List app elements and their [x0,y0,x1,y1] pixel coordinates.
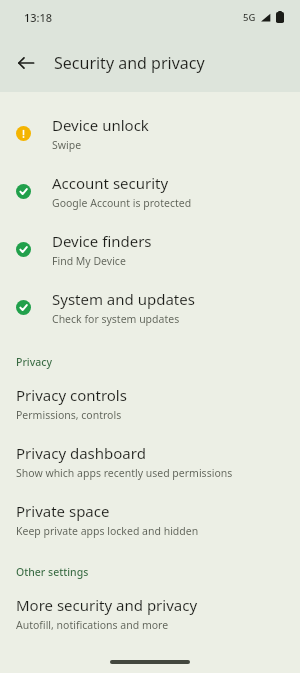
button[interactable]: Account security [0,162,300,220]
staticText: Permissions, controls [16,408,122,422]
staticText: Check for system updates [52,312,180,326]
staticText: Other settings [16,565,89,579]
staticText: Privacy dashboard [16,443,146,463]
staticText: Account security [52,173,169,193]
staticText: Keep private apps locked and hidden [16,524,199,538]
button[interactable]: Private space [0,490,300,548]
staticText: Privacy controls [16,385,127,405]
staticText: 13:18 [24,10,53,25]
staticText: System and updates [52,289,195,309]
staticText: Security and privacy [54,52,205,74]
button[interactable]: Back [6,43,46,83]
staticText: Show which apps recently used permission… [16,466,233,480]
staticText: 5G [243,11,256,24]
button[interactable]: Device unlock [0,104,300,162]
button[interactable]: Privacy dashboard [0,432,300,490]
staticText: More security and privacy [16,595,198,615]
staticText: Privacy [16,355,52,369]
staticText: Private space [16,501,110,521]
staticText: Device finders [52,231,152,251]
staticText: Find My Device [52,254,126,268]
staticText: Autofill, notifications and more [16,618,169,632]
button[interactable]: Device finders [0,220,300,278]
staticText: Google Account is protected [52,196,192,210]
button[interactable]: System and updates [0,278,300,336]
button[interactable]: Privacy controls [0,374,300,432]
staticText: Swipe [52,138,82,152]
staticText: Device unlock [52,115,149,135]
button[interactable]: More security and privacy [0,584,300,642]
